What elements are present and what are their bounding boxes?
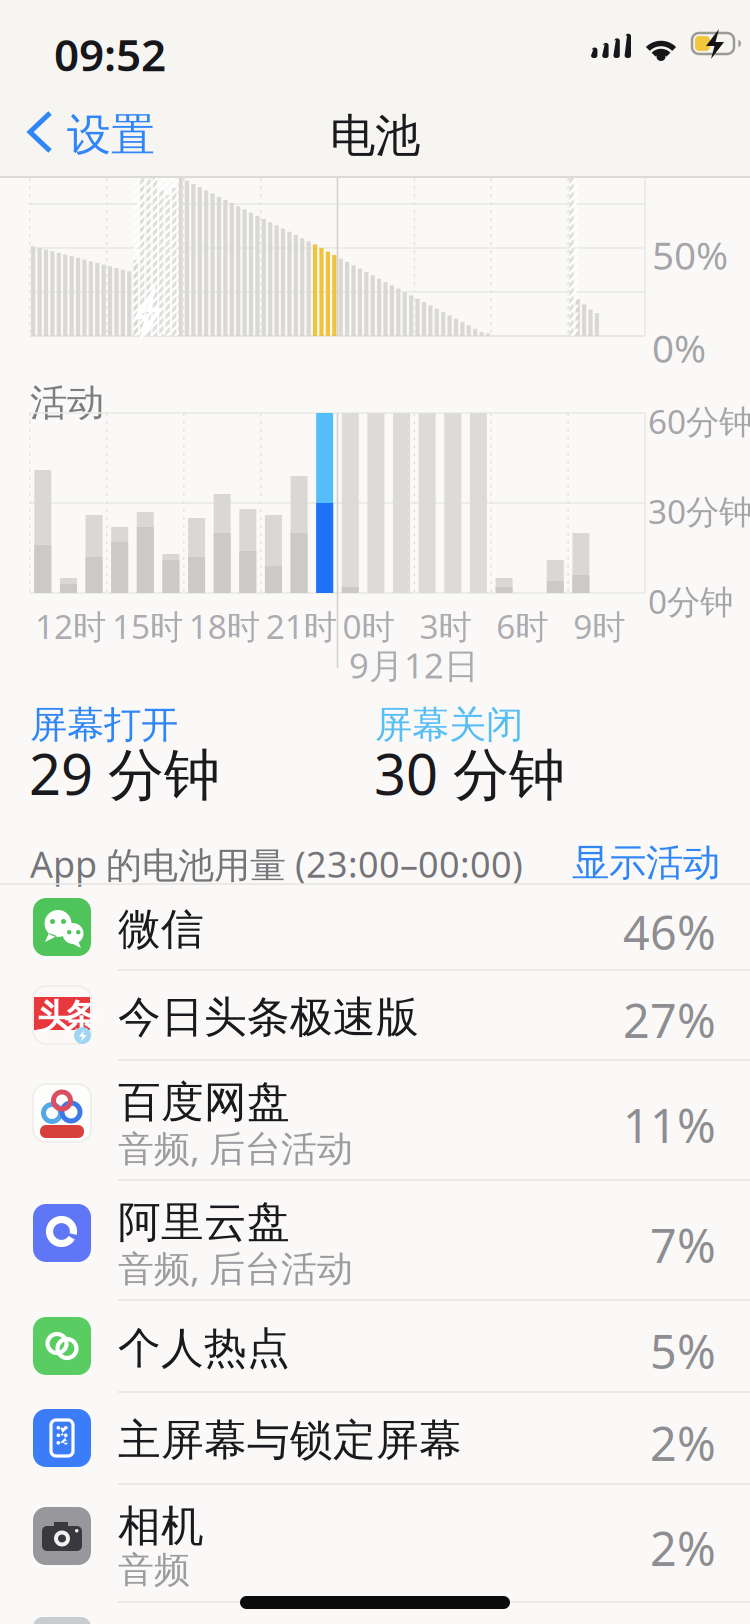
button[interactable]: 微信 — [0, 884, 750, 970]
staticText: 显示活动 — [572, 840, 720, 886]
staticText: 电池 — [330, 108, 420, 164]
staticText: 11% — [623, 1094, 716, 1156]
button[interactable]: 设置 — [0, 99, 170, 165]
staticText: 2% — [650, 1412, 716, 1474]
button[interactable]: 阿里云盘 — [0, 1180, 750, 1300]
staticText: 50% — [652, 229, 728, 280]
staticText: 18时 — [189, 604, 260, 648]
button[interactable]: 百度网盘 — [0, 1060, 750, 1180]
button[interactable]: 头 — [0, 970, 750, 1060]
staticText: 60分钟 — [648, 399, 750, 443]
staticText: 0% — [652, 322, 706, 373]
button[interactable]: 主屏幕与锁定屏幕 — [0, 1392, 750, 1484]
staticText: 条 — [63, 996, 98, 1039]
staticText: 6时 — [496, 604, 548, 648]
staticText: 27% — [623, 989, 716, 1051]
staticText: 今日头条极速版 — [118, 991, 419, 1043]
staticText: 相机 — [118, 1500, 204, 1552]
staticText: 09:52 — [54, 25, 166, 83]
staticText: 5% — [650, 1320, 716, 1382]
staticText: 21时 — [266, 604, 337, 648]
staticText: 主屏幕与锁定屏幕 — [118, 1414, 462, 1466]
staticText: 0分钟 — [648, 579, 733, 623]
staticText: 12时 — [35, 604, 106, 648]
staticText: 3时 — [419, 604, 471, 648]
staticText: 活动 — [30, 380, 104, 426]
staticText: 2% — [650, 1517, 716, 1579]
staticText: 微信 — [118, 903, 204, 955]
staticText: App 的电池用量 (23:00–00:00) — [30, 840, 523, 888]
staticText: 音频, 后台活动 — [118, 1244, 353, 1292]
staticText: 百度网盘 — [118, 1076, 290, 1128]
staticText: 屏幕打开 — [30, 702, 178, 748]
staticText: 15时 — [112, 604, 183, 648]
staticText: 屏幕关闭 — [375, 702, 523, 748]
staticText: 头 — [37, 996, 72, 1039]
staticText: 29 分钟 — [29, 736, 220, 810]
staticText: 音频 — [118, 1548, 190, 1592]
staticText: 阿里云盘 — [118, 1196, 290, 1248]
staticText: 9时 — [573, 604, 625, 648]
button[interactable]: 个人热点 — [0, 1300, 750, 1392]
staticText: 设置 — [67, 108, 155, 162]
staticText: 个人热点 — [118, 1322, 290, 1374]
button[interactable]: 显示活动 — [520, 840, 720, 886]
staticText: 30 分钟 — [374, 736, 565, 810]
button[interactable]: 相机 — [0, 1484, 750, 1602]
staticText: 0时 — [342, 604, 394, 648]
staticText: 9月12日 — [349, 642, 479, 688]
staticText: 音频, 后台活动 — [118, 1124, 353, 1172]
staticText: 7% — [650, 1214, 716, 1276]
staticText: 46% — [623, 901, 716, 963]
staticText: 30分钟 — [648, 489, 750, 533]
